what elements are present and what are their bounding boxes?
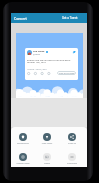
button[interactable]: Share to: [60, 133, 84, 145]
staticText: Customize: [60, 162, 84, 165]
staticText: The Verge: [33, 50, 45, 53]
staticText: Background: [11, 142, 35, 145]
staticText: Change Video: [11, 162, 35, 165]
button[interactable]: Convert: [11, 13, 87, 23]
staticText: 1:03 PM · Apr 24, 2021: [27, 68, 47, 71]
staticText: Media: [35, 162, 59, 165]
button[interactable]: Background: [11, 133, 35, 145]
staticText: Energy like life you want that little ex…: [27, 58, 76, 64]
button[interactable]: Change video: [11, 153, 35, 165]
staticText: Copy link to Tweet: [59, 72, 75, 74]
staticText: Get a Tweet: [62, 16, 78, 20]
button[interactable]: The Verge: [25, 48, 78, 80]
staticText: Convert: [14, 16, 27, 21]
staticText: Start Video: [35, 142, 59, 145]
button[interactable]: Copy link to Tweet: [57, 71, 76, 75]
staticText: @verge: [33, 53, 40, 56]
staticText: Share to: [60, 142, 84, 145]
button[interactable]: Start video: [35, 133, 59, 145]
button[interactable]: Media: [35, 153, 59, 165]
button[interactable]: Customize: [60, 153, 84, 165]
